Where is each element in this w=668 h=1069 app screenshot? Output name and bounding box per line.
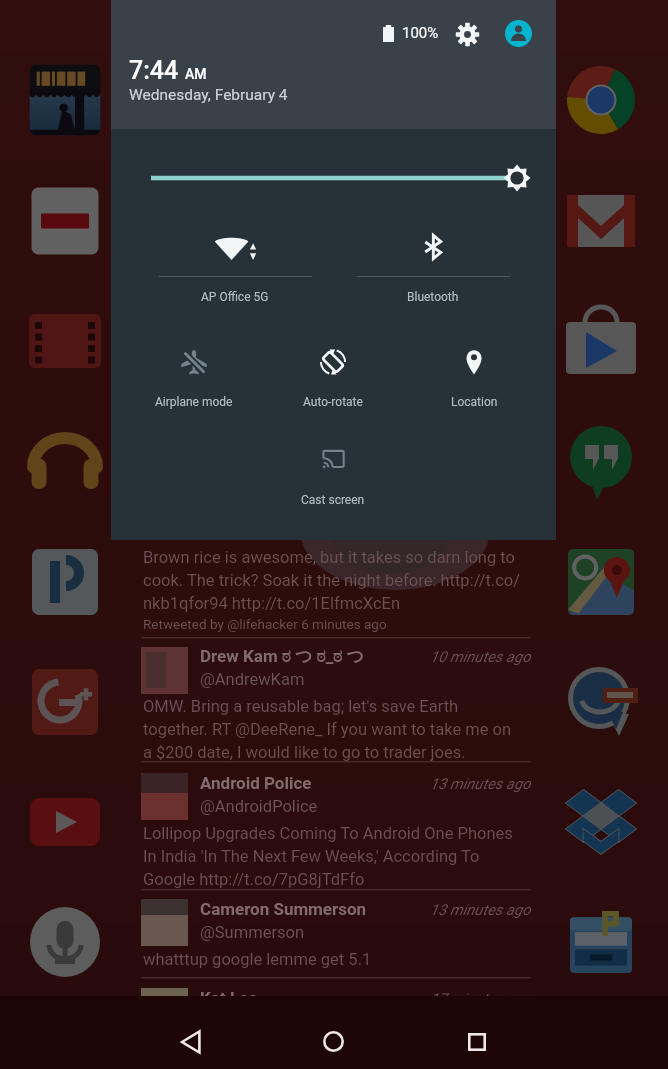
- button[interactable]: Brightness: [111, 155, 556, 201]
- staticText: OMW. Bring a reusable bag; let's save Ea…: [143, 697, 459, 716]
- staticText: Airplane mode: [155, 395, 233, 409]
- staticText: Brown rice is awesome, but it takes so d…: [143, 548, 515, 567]
- staticText: @AndroidPolice: [200, 797, 318, 816]
- staticText: 7:44: [129, 56, 179, 85]
- staticText: @Summerson: [200, 923, 305, 942]
- staticText: AM: [185, 66, 207, 82]
- staticText: 17 minutes ago: [430, 990, 531, 1008]
- button[interactable]: Back: [120, 996, 262, 1069]
- staticText: Wednesday, February 4: [129, 86, 288, 104]
- staticText: a $200 date, I would like to go to trade…: [143, 743, 466, 762]
- staticText: Kat Lee: [200, 988, 258, 1008]
- staticText: Android Police: [200, 773, 312, 793]
- staticText: Bluetooth: [407, 290, 459, 304]
- staticText: Location: [451, 395, 498, 409]
- button[interactable]: User profile: [504, 19, 533, 48]
- staticText: 13 minutes ago: [430, 901, 531, 919]
- staticText: 13 minutes ago: [430, 775, 531, 793]
- staticText: Drew Kam ಠ つ ಠ_ಠ つ: [200, 646, 364, 667]
- button[interactable]: Auto-rotate: [263, 336, 403, 408]
- staticText: In India 'In The Next Few Weeks,' Accord…: [143, 847, 480, 866]
- staticText: Lollipop Upgrades Coming To Android One …: [143, 824, 513, 843]
- staticText: Cameron Summerson: [200, 899, 367, 919]
- staticText: AP Office 5G: [201, 290, 269, 304]
- button[interactable]: AP Office 5G: [136, 220, 334, 312]
- button[interactable]: Home: [262, 996, 405, 1069]
- staticText: @AndrewKam: [200, 670, 305, 689]
- staticText: 10 minutes ago: [430, 648, 531, 666]
- button[interactable]: Bluetooth: [334, 220, 532, 312]
- staticText: nkb1qfor94 http://t.co/1ElfmcXcEn: [143, 594, 401, 613]
- staticText: Retweeted by @lifehacker 6 minutes ago: [143, 616, 387, 632]
- button[interactable]: Location: [404, 336, 544, 408]
- button[interactable]: Recent apps: [405, 996, 548, 1069]
- button[interactable]: Cast screen: [263, 434, 403, 506]
- staticText: 100%: [402, 24, 439, 42]
- button[interactable]: Settings: [451, 18, 483, 50]
- staticText: Cast screen: [301, 493, 365, 507]
- staticText: together. RT @DeeRene_ If you want to ta…: [143, 720, 512, 739]
- staticText: Google http://t.co/7pG8jTdFfo: [143, 870, 365, 889]
- staticText: cook. The trick? Soak it the night befor…: [143, 571, 521, 590]
- staticText: Auto-rotate: [303, 395, 363, 409]
- staticText: whatttup google lemme get 5.1: [143, 950, 372, 969]
- button[interactable]: Airplane mode: [124, 336, 264, 408]
